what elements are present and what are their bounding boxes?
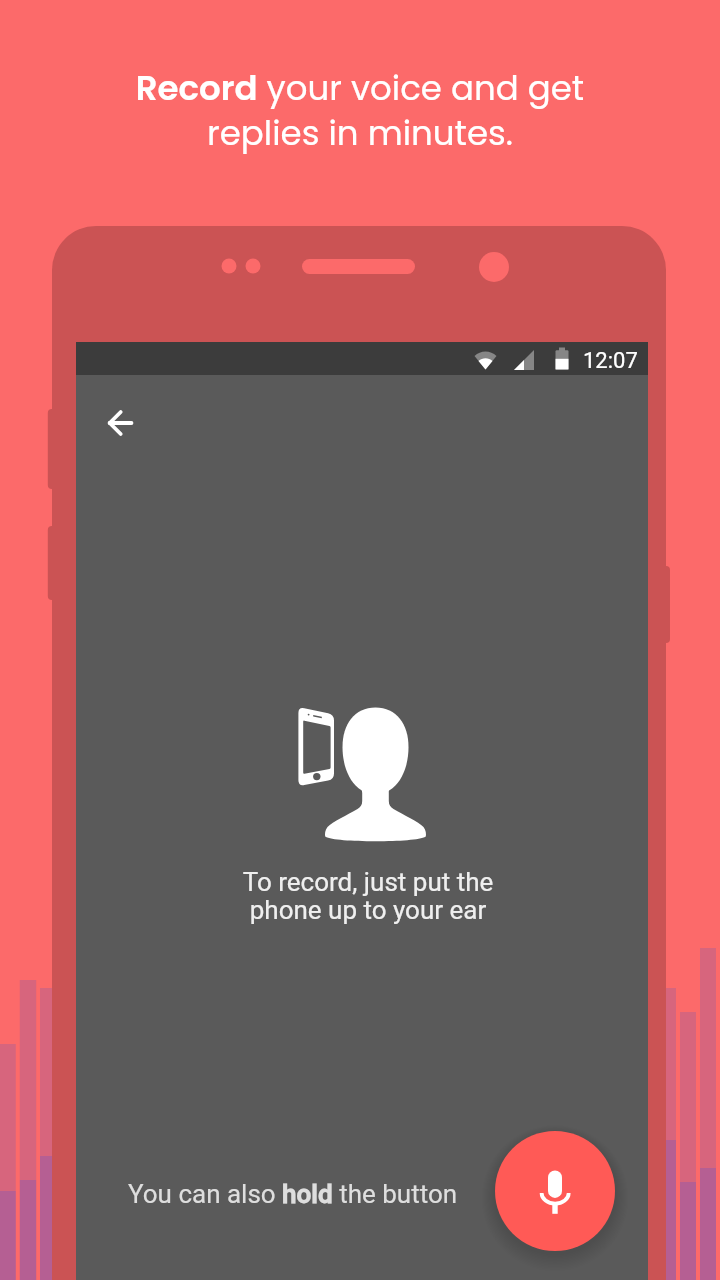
button[interactable]: Back [92,396,148,452]
button[interactable]: Record voice message [495,1131,615,1251]
staticText: You can also hold the button [128,1179,458,1209]
staticText: Record your voice and get replies in min… [0,64,720,157]
staticText: To record, just put the phone up to your… [82,867,654,926]
staticText: 12:07 [583,348,638,374]
